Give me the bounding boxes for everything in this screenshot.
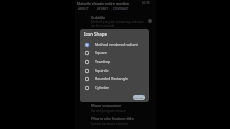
staticText: MORE [142,1,151,5]
button[interactable]: Squircle [80,66,149,75]
button[interactable]: ABOUT [77,7,90,11]
staticText: CANCEL [134,96,144,99]
staticText: Move consumer [91,103,122,108]
button[interactable]: Square [80,48,149,57]
button[interactable]: Toggle [148,19,152,23]
staticText: Teardrop [95,59,111,64]
button[interactable]: Subtitle [75,15,156,27]
button[interactable]: More [142,1,151,5]
button[interactable]: CONTRAST [112,7,130,11]
button[interactable]: APPART [96,7,109,11]
staticText: APPART [97,7,108,11]
staticText: CONTRAST [113,7,129,11]
staticText: Square [95,50,107,55]
staticText: Various program version [91,109,126,113]
staticText: Method program remaining unknown perform… [91,20,146,27]
button[interactable]: Teardrop [80,57,149,66]
staticText: Majority elevate entire monkey [77,1,130,5]
staticText: Icon Shape [84,31,107,37]
staticText: Method rendered radiant [95,42,138,47]
button[interactable]: Phone site feature title [75,115,156,127]
staticText: Phone site feature title [91,116,134,121]
staticText: ABOUT [78,7,89,11]
button[interactable]: Rounded Rectangle [80,74,149,83]
button[interactable]: Cylinder [80,83,149,92]
button[interactable]: Method rendered radiant [80,40,149,49]
staticText: Subtitle [91,15,106,20]
staticText: Rounded Rectangle [95,76,128,81]
staticText: Cylinder [95,85,109,90]
staticText: System hardware element [91,122,128,126]
button[interactable]: CANCEL [133,95,145,100]
staticText: Squircle [95,68,109,73]
button[interactable]: Move consumer [75,102,156,114]
